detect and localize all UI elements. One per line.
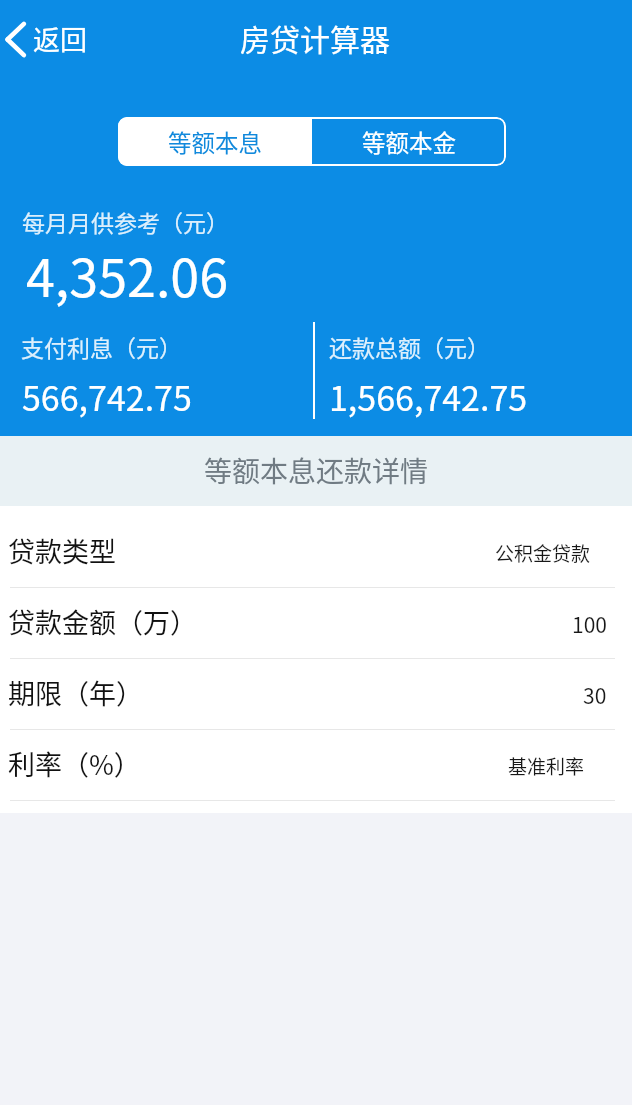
staticText: 房贷计算器 [240, 16, 390, 59]
staticText: 贷款类型 [8, 531, 116, 570]
staticText: 期限（年） [8, 673, 143, 712]
button[interactable]: 期限（年） [0, 659, 632, 730]
staticText: 公积金贷款 [495, 539, 591, 567]
staticText: 等额本金 [362, 125, 456, 159]
staticText: 返回 [33, 19, 87, 58]
staticText: 等额本息还款详情 [204, 450, 429, 491]
button[interactable]: 贷款金额（万） [0, 588, 632, 659]
button[interactable]: 等额本息 [118, 117, 312, 166]
button[interactable]: 等额本金 [312, 117, 506, 166]
staticText: 支付利息（元） [21, 330, 182, 363]
staticText: 还款总额（元） [329, 330, 490, 363]
button[interactable]: Back [0, 14, 99, 65]
staticText: 贷款金额（万） [8, 602, 197, 641]
staticText: 1,566,742.75 [329, 372, 528, 421]
staticText: 4,352.06 [26, 237, 229, 312]
staticText: 等额本息 [168, 125, 262, 159]
staticText: 30 [583, 680, 607, 710]
staticText: 566,742.75 [22, 372, 192, 421]
button[interactable]: 利率（%） [0, 730, 632, 801]
staticText: 100 [572, 609, 607, 639]
button[interactable]: 贷款类型 [0, 517, 632, 588]
staticText: 每月月供参考（元） [22, 205, 229, 238]
staticText: 利率（%） [8, 744, 141, 783]
other: Back [5, 22, 26, 57]
staticText: 基准利率 [508, 752, 585, 780]
